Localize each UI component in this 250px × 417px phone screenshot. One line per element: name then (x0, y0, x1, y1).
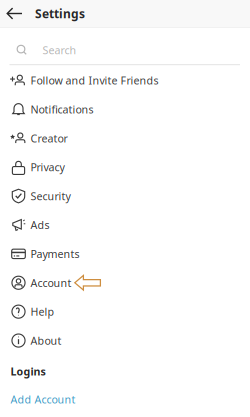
staticText: Logins (10, 364, 45, 378)
button[interactable]: Privacy (0, 153, 250, 182)
button[interactable]: Security (0, 182, 250, 210)
staticText: Account (30, 276, 71, 290)
button[interactable]: Search (0, 28, 250, 64)
button[interactable]: About (0, 326, 250, 355)
staticText: Payments (30, 247, 79, 261)
staticText: Settings (35, 5, 85, 21)
staticText: Follow and Invite Friends (30, 73, 158, 88)
button[interactable]: Ads (0, 210, 250, 239)
button[interactable]: Payments (0, 239, 250, 268)
staticText: Creator (30, 131, 67, 145)
staticText: Privacy (30, 160, 64, 174)
staticText: Search (43, 43, 77, 57)
staticText: Add Account (10, 392, 75, 406)
staticText: Security (30, 189, 70, 203)
button[interactable]: Add Account (0, 388, 250, 411)
button[interactable]: Notifications (0, 95, 250, 124)
staticText: Notifications (30, 102, 93, 116)
staticText: Help (30, 305, 54, 319)
button[interactable]: Back (1, 0, 28, 27)
staticText: Ads (30, 218, 49, 232)
button[interactable]: Account (0, 268, 250, 297)
button[interactable]: Help (0, 297, 250, 326)
staticText: About (30, 333, 61, 348)
button[interactable]: Follow and Invite Friends (0, 66, 250, 95)
button[interactable]: Creator (0, 124, 250, 153)
